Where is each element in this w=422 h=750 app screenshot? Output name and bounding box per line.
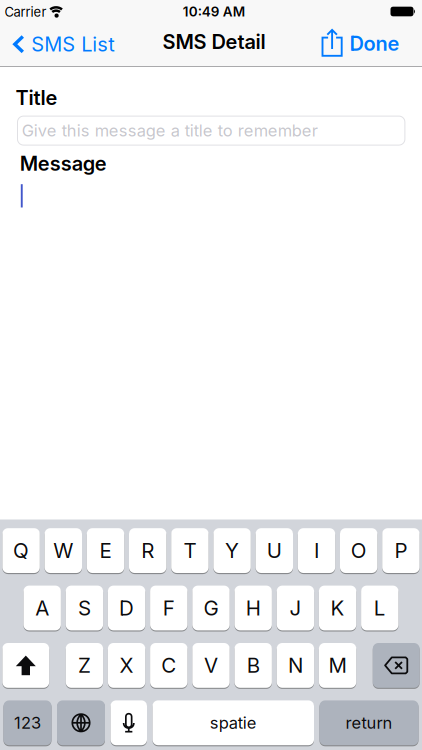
button[interactable]: Z xyxy=(66,643,103,688)
button[interactable]: Done xyxy=(339,33,422,57)
button[interactable]: V xyxy=(192,643,230,688)
staticText: F xyxy=(163,596,175,620)
button[interactable]: D xyxy=(108,586,145,630)
staticText: Title xyxy=(16,86,58,110)
button[interactable]: U xyxy=(256,528,293,573)
button[interactable]: G xyxy=(192,586,230,630)
button[interactable]: Shift xyxy=(2,643,49,688)
button[interactable]: T xyxy=(171,528,209,573)
button[interactable]: E xyxy=(87,528,124,573)
staticText: return xyxy=(345,713,392,733)
button[interactable]: O xyxy=(340,528,377,573)
staticText: L xyxy=(374,596,386,620)
button[interactable]: L xyxy=(361,586,398,630)
button[interactable]: I xyxy=(298,528,335,573)
staticText: Z xyxy=(78,653,91,677)
staticText: X xyxy=(120,653,134,677)
staticText: spatie xyxy=(210,713,257,733)
staticText: T xyxy=(183,538,196,563)
staticText: Y xyxy=(225,538,239,563)
button[interactable]: Share xyxy=(318,31,339,59)
staticText: 10:49 AM xyxy=(183,3,245,19)
staticText: 123 xyxy=(14,713,41,733)
button[interactable]: return xyxy=(319,700,418,745)
staticText: Done xyxy=(349,32,399,55)
button[interactable]: A xyxy=(23,586,61,630)
staticText: C xyxy=(161,653,176,677)
staticText: D xyxy=(119,596,134,620)
button[interactable]: R xyxy=(129,528,166,573)
staticText: H xyxy=(246,596,261,620)
button[interactable]: P xyxy=(382,528,420,573)
button[interactable]: M xyxy=(319,643,356,688)
staticText: P xyxy=(394,538,407,563)
button[interactable]: Dictation xyxy=(110,700,147,745)
button[interactable]: X xyxy=(108,643,145,688)
staticText: G xyxy=(203,596,218,620)
button[interactable]: S xyxy=(66,586,103,630)
staticText: V xyxy=(204,653,218,677)
staticText: R xyxy=(141,538,154,563)
staticText: Give this message a title to remember xyxy=(22,121,318,140)
staticText: Q xyxy=(13,538,29,563)
staticText: SMS Detail xyxy=(162,30,265,54)
button[interactable]: H xyxy=(234,586,272,630)
button[interactable]: K xyxy=(319,586,356,630)
staticText: K xyxy=(331,596,345,620)
staticText: SMS List xyxy=(31,32,115,56)
staticText: M xyxy=(329,653,347,677)
staticText: S xyxy=(78,596,91,620)
button[interactable]: spatie xyxy=(152,700,314,745)
staticText: U xyxy=(267,538,282,563)
button[interactable]: N xyxy=(277,643,314,688)
button[interactable]: 123 xyxy=(3,700,51,745)
staticText: A xyxy=(35,596,49,620)
staticText: J xyxy=(289,596,301,620)
button[interactable]: SMS List xyxy=(0,33,115,57)
staticText: N xyxy=(288,653,303,677)
button[interactable]: J xyxy=(277,586,314,630)
button[interactable]: Q xyxy=(2,528,40,573)
button[interactable]: W xyxy=(45,528,82,573)
button[interactable]: Y xyxy=(213,528,251,573)
staticText: E xyxy=(99,538,111,563)
staticText: I xyxy=(314,538,319,563)
button[interactable]: C xyxy=(150,643,187,688)
button[interactable]: F xyxy=(150,586,187,630)
staticText: O xyxy=(351,538,367,563)
button[interactable]: Delete xyxy=(373,643,420,688)
button[interactable]: B xyxy=(234,643,272,688)
staticText: W xyxy=(53,538,73,563)
staticText: Message xyxy=(20,152,107,175)
button[interactable]: Title xyxy=(0,116,405,146)
staticText: B xyxy=(247,653,260,677)
staticText: Carrier xyxy=(4,4,46,20)
button[interactable]: Next keyboard xyxy=(57,700,105,745)
